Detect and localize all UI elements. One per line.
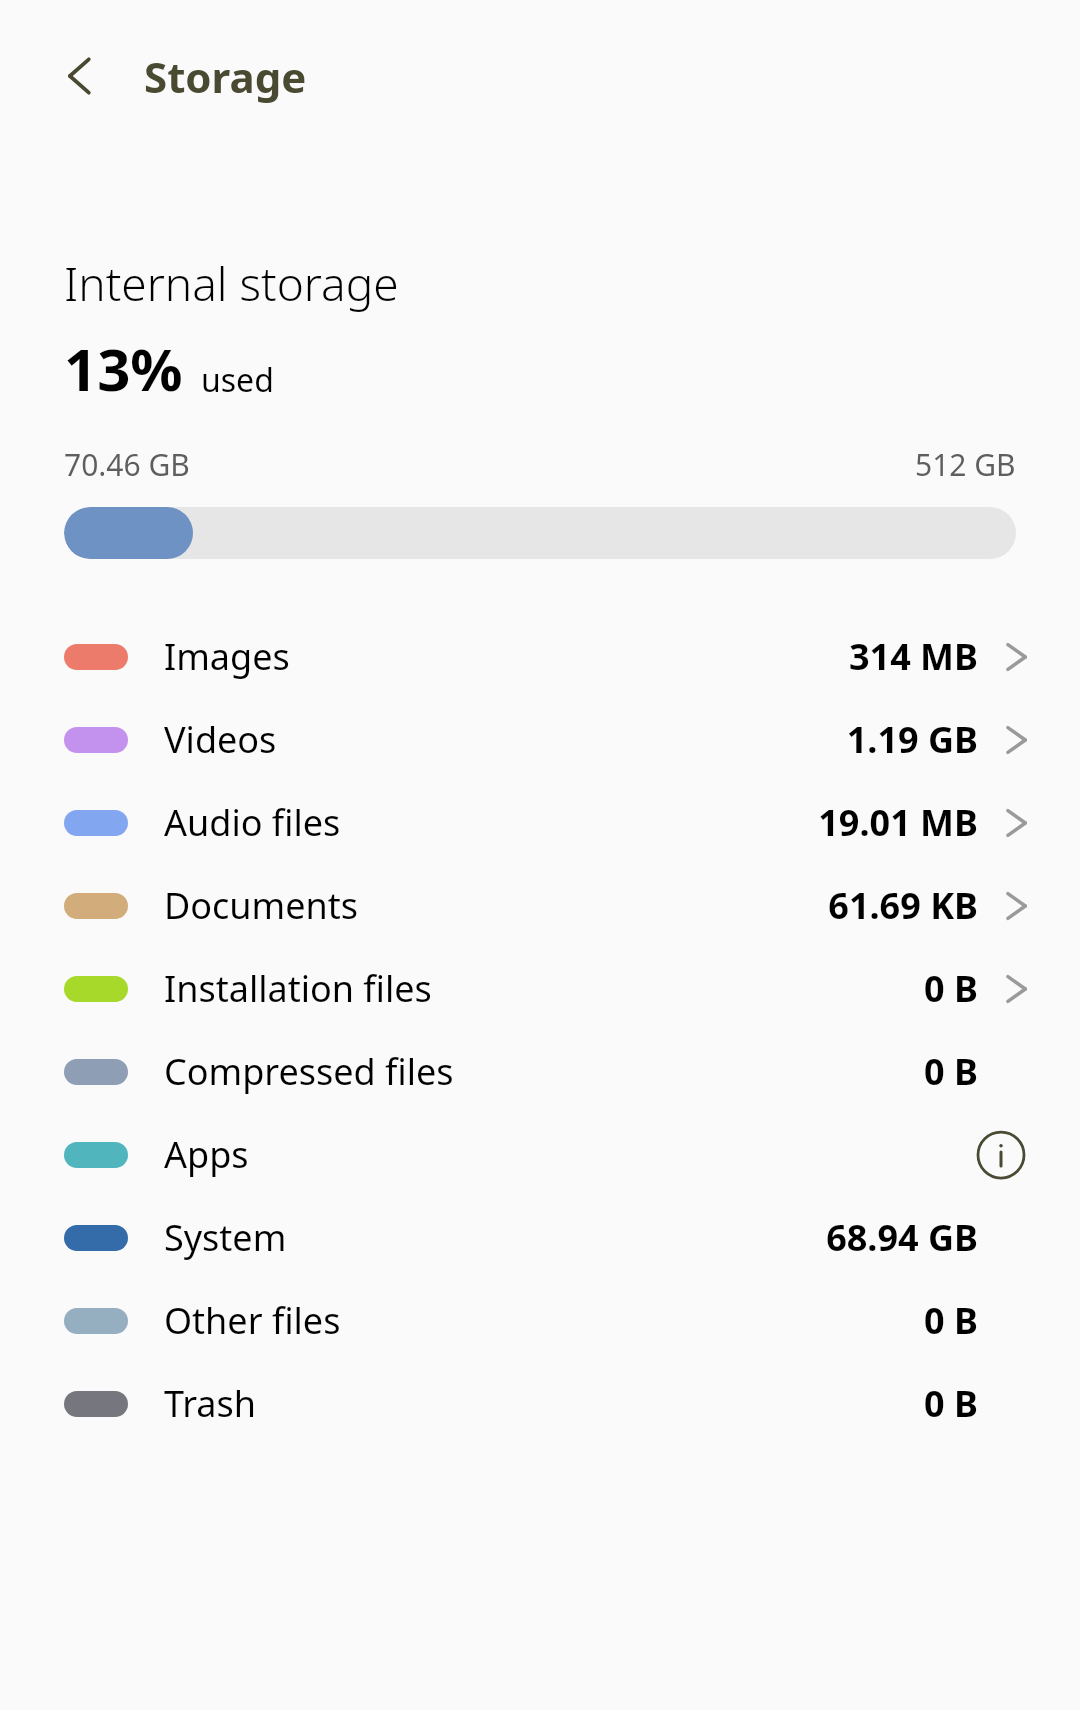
staticText: Videos (164, 715, 277, 764)
staticText: Images (164, 632, 290, 681)
button[interactable]: Images (0, 615, 1080, 698)
staticText: Apps (164, 1130, 249, 1179)
staticText: used (201, 358, 274, 402)
staticText: 13% (64, 329, 183, 408)
staticText: Storage (144, 48, 307, 105)
staticText: Trash (164, 1379, 257, 1428)
staticText: 314 MB (848, 632, 978, 681)
staticText: Audio files (164, 798, 341, 847)
button[interactable]: Audio files (0, 781, 1080, 864)
button[interactable]: Compressed files (0, 1030, 1080, 1113)
staticText: 61.69 KB (828, 881, 978, 930)
staticText: Installation files (164, 964, 432, 1013)
button[interactable]: Videos (0, 698, 1080, 781)
staticText: 68.94 GB (826, 1213, 978, 1262)
button[interactable]: Apps (0, 1113, 1080, 1196)
button[interactable]: System (0, 1196, 1080, 1279)
staticText: 70.46 GB (64, 444, 190, 485)
staticText: Compressed files (164, 1047, 454, 1096)
staticText: Documents (164, 881, 359, 930)
staticText: 0 B (924, 1379, 978, 1428)
button[interactable]: Documents (0, 864, 1080, 947)
staticText: 512 GB (915, 444, 1016, 485)
button[interactable]: Installation files (0, 947, 1080, 1030)
staticText: 0 B (924, 1296, 978, 1345)
button[interactable]: Back (44, 40, 116, 112)
button[interactable]: Trash (0, 1362, 1080, 1445)
staticText: 19.01 MB (818, 798, 978, 847)
staticText: System (164, 1213, 287, 1262)
button[interactable]: Apps storage info (972, 1126, 1030, 1184)
staticText: 0 B (924, 1047, 978, 1096)
staticText: Internal storage (64, 252, 399, 315)
staticText: 1.19 GB (846, 715, 978, 764)
staticText: 0 B (924, 964, 978, 1013)
staticText: Other files (164, 1296, 341, 1345)
button[interactable]: Other files (0, 1279, 1080, 1362)
